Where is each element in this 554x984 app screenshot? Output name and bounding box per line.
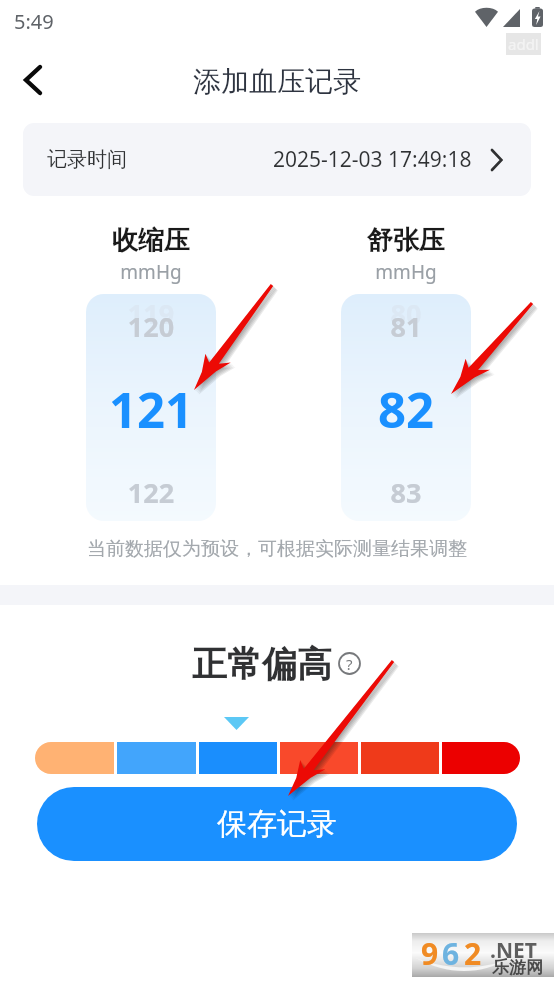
staticText: mmHg	[341, 259, 471, 285]
staticText: 83	[341, 474, 471, 511]
staticText: 保存记录	[217, 805, 337, 843]
staticText: 82	[341, 376, 471, 443]
staticText: .NET	[490, 936, 537, 965]
staticText: 5:49	[14, 8, 54, 35]
staticText: 收缩压	[86, 224, 216, 257]
staticText: mmHg	[86, 259, 216, 285]
staticText: 6	[442, 933, 461, 974]
staticText: 81	[341, 308, 471, 345]
button[interactable]: Help	[338, 652, 361, 675]
staticText: 记录时间	[47, 147, 127, 172]
button[interactable]: 记录时间	[23, 123, 531, 196]
staticText: addl	[508, 34, 539, 54]
staticText: ?	[346, 654, 353, 674]
button[interactable]: 80	[341, 294, 471, 521]
button[interactable]: Back	[5, 52, 61, 108]
staticText: 119	[86, 295, 216, 332]
staticText: 乐游网	[492, 957, 543, 978]
staticText: 添加血压记录	[0, 64, 554, 99]
staticText: 正常偏高	[192, 642, 332, 686]
staticText: 80	[341, 295, 471, 332]
button[interactable]: 保存记录	[37, 787, 517, 861]
staticText: 121	[86, 376, 216, 443]
staticText: 120	[86, 308, 216, 345]
staticText: 9	[421, 933, 440, 974]
staticText: 2025-12-03 17:49:18	[273, 145, 472, 174]
button[interactable]: 119	[86, 294, 216, 521]
staticText: 当前数据仅为预设，可根据实际测量结果调整	[0, 537, 554, 561]
staticText: 舒张压	[341, 224, 471, 257]
staticText: 122	[86, 474, 216, 511]
staticText: 2	[464, 933, 483, 974]
